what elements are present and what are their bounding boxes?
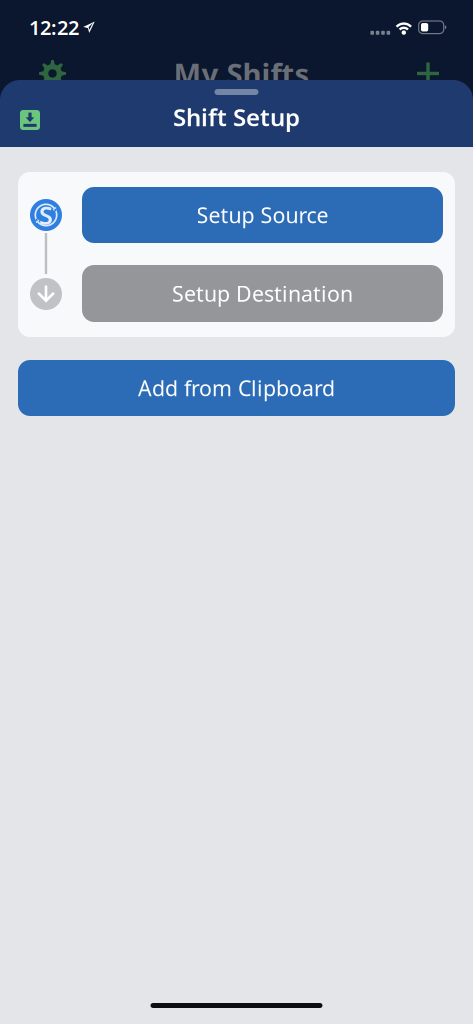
staticText: Add from Clipboard: [138, 374, 335, 402]
button[interactable]: Add from Clipboard: [0, 360, 473, 416]
staticText: Setup Destination: [172, 279, 353, 308]
staticText: Shift Setup: [173, 101, 300, 133]
staticText: Setup Source: [196, 201, 328, 229]
button[interactable]: Setup Source: [82, 187, 443, 243]
button[interactable]: Save: [0, 80, 54, 147]
staticText: 12:22: [29, 14, 79, 41]
staticText: S: [39, 198, 53, 232]
staticText: My Shifts: [173, 54, 309, 93]
button[interactable]: Setup Destination: [82, 265, 443, 322]
